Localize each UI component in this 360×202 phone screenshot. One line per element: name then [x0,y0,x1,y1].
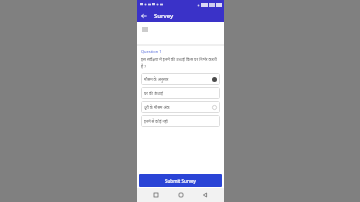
staticText: Question 1 [141,49,162,54]
staticText: Survey [154,12,174,20]
staticText: इस सर्वेक्षण में इनमें की उच्चई किस पर न… [141,57,220,69]
button[interactable]: दूरी के मौसम अंक [141,101,220,113]
button[interactable]: Submit Survey [139,174,222,187]
staticText: इनमें से कोई नहीं [144,119,212,124]
button[interactable]: Recent apps [151,190,161,200]
button[interactable]: Back [200,190,210,200]
staticText: मौसम के अनुसार [144,77,212,82]
button[interactable]: Back [139,11,149,21]
button[interactable]: Survey [154,12,174,20]
button[interactable]: Home [176,190,186,200]
staticText: घर की ऊंचाई [144,91,212,96]
other: Selected [212,77,217,82]
button[interactable]: मौसम के अनुसार [141,73,220,85]
button[interactable] [137,22,224,44]
staticText: Submit Survey [165,178,196,184]
button[interactable]: इनमें से कोई नहीं [141,115,220,127]
button[interactable]: घर की ऊंचाई [141,87,220,99]
staticText: दूरी के मौसम अंक [144,105,212,110]
